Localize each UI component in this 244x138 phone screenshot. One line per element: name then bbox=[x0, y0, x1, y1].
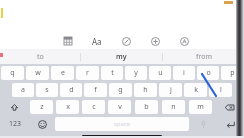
staticText: space bbox=[114, 120, 131, 128]
staticText: my bbox=[116, 52, 127, 62]
button[interactable]: from bbox=[163, 49, 244, 64]
staticText: r bbox=[86, 68, 89, 78]
button[interactable]: p bbox=[221, 66, 243, 80]
button[interactable]: g bbox=[109, 83, 132, 97]
staticText: 123 bbox=[9, 119, 22, 129]
staticText: l bbox=[220, 85, 222, 95]
button[interactable]: o bbox=[197, 66, 219, 80]
button[interactable]: to bbox=[0, 49, 80, 64]
button[interactable]: q bbox=[1, 66, 24, 80]
button[interactable]: d bbox=[60, 83, 82, 97]
button[interactable]: i bbox=[173, 66, 195, 80]
button[interactable]: c bbox=[82, 100, 105, 114]
button[interactable]: s bbox=[36, 83, 58, 97]
staticText: c bbox=[92, 102, 96, 112]
staticText: b bbox=[144, 102, 149, 112]
staticText: x bbox=[66, 102, 70, 112]
staticText: w bbox=[35, 68, 41, 78]
button[interactable]: a bbox=[12, 83, 34, 97]
button[interactable]: Attach bbox=[176, 33, 192, 49]
button[interactable]: l bbox=[209, 83, 232, 97]
staticText: m bbox=[197, 102, 204, 112]
staticText: t bbox=[111, 68, 114, 78]
button[interactable]: t bbox=[101, 66, 123, 80]
staticText: u bbox=[158, 68, 163, 78]
button[interactable]: f bbox=[84, 83, 107, 97]
staticText: h bbox=[143, 85, 148, 95]
button[interactable]: Backspace bbox=[216, 100, 243, 114]
button[interactable]: Return bbox=[217, 117, 243, 131]
staticText: d bbox=[69, 85, 74, 95]
button[interactable]: 123 bbox=[1, 117, 29, 131]
button[interactable]: n bbox=[162, 100, 185, 114]
staticText: o bbox=[206, 68, 211, 78]
staticText: q bbox=[10, 68, 15, 78]
staticText: p bbox=[230, 68, 235, 78]
button[interactable]: r bbox=[76, 66, 99, 80]
staticText: from bbox=[196, 52, 212, 62]
button[interactable]: m bbox=[189, 100, 212, 114]
button[interactable]: Dictate bbox=[191, 117, 215, 131]
staticText: f bbox=[94, 85, 97, 95]
staticText: y bbox=[134, 68, 138, 78]
button[interactable]: b bbox=[135, 100, 158, 114]
staticText: i bbox=[183, 68, 185, 78]
button[interactable]: Aa bbox=[89, 33, 105, 49]
button[interactable]: x bbox=[56, 100, 79, 114]
staticText: g bbox=[118, 85, 123, 95]
staticText: j bbox=[170, 85, 172, 95]
staticText: z bbox=[40, 102, 44, 112]
staticText: to bbox=[37, 52, 44, 62]
staticText: Aa bbox=[92, 36, 102, 47]
staticText: k bbox=[194, 85, 198, 95]
button[interactable]: Shift bbox=[1, 100, 28, 114]
staticText: s bbox=[45, 85, 49, 95]
button[interactable]: Clear formatting bbox=[118, 33, 134, 49]
button[interactable]: Emoji bbox=[31, 117, 53, 131]
button[interactable]: k bbox=[184, 83, 207, 97]
button[interactable]: y bbox=[125, 66, 147, 80]
button[interactable]: Table bbox=[60, 33, 76, 49]
button[interactable]: h bbox=[134, 83, 157, 97]
staticText: e bbox=[61, 68, 65, 78]
button[interactable]: e bbox=[51, 66, 74, 80]
button[interactable]: my bbox=[81, 49, 162, 64]
button[interactable]: w bbox=[26, 66, 49, 80]
staticText: n bbox=[171, 102, 176, 112]
button[interactable]: j bbox=[159, 83, 182, 97]
staticText: v bbox=[118, 102, 122, 112]
button[interactable]: Add bbox=[147, 33, 163, 49]
button[interactable]: v bbox=[108, 100, 131, 114]
button[interactable]: z bbox=[30, 100, 53, 114]
button[interactable]: u bbox=[149, 66, 171, 80]
button[interactable]: space bbox=[55, 117, 189, 131]
staticText: a bbox=[21, 85, 25, 95]
